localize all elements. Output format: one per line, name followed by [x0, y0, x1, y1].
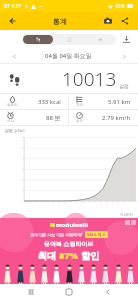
staticText: 2.79 km/h	[102, 114, 131, 122]
staticText: 걸음	[119, 83, 129, 89]
button[interactable]: 거리	[69, 94, 138, 109]
button[interactable]: Steps tab	[23, 35, 53, 44]
staticText: 걸음 수(보)	[5, 128, 25, 133]
button[interactable]: 속도	[69, 110, 138, 125]
staticText: 04월 04일 화요일	[45, 52, 92, 60]
staticText: 할인	[79, 249, 100, 261]
staticText: 시간(시)	[120, 212, 133, 217]
staticText: 최대	[38, 249, 59, 261]
button[interactable]: Back	[100, 284, 116, 299]
staticText: 칼로리	[7, 103, 18, 107]
staticText: SALE 예고	[87, 232, 106, 237]
button[interactable]: Camera	[101, 14, 115, 28]
staticText: 88 분	[46, 114, 61, 122]
staticText: moduinelli	[56, 221, 88, 229]
button[interactable]: 시간	[0, 110, 68, 125]
button[interactable]: Back	[6, 14, 20, 28]
button[interactable]: Tab	[86, 35, 115, 44]
button[interactable]: 칼로리	[0, 94, 68, 109]
staticText: 45%	[115, 3, 125, 10]
button[interactable]: Share	[118, 14, 132, 28]
staticText: 최저가를 사상 가장 저렴하게?	[30, 232, 83, 237]
staticText: 10013	[62, 66, 117, 92]
staticText: 시간	[7, 119, 14, 123]
button[interactable]: Advertisement banner	[0, 218, 138, 284]
staticText: 5.91 km	[108, 98, 131, 106]
staticText: 333 kcal	[38, 98, 61, 106]
button[interactable]: Home	[61, 284, 77, 299]
button[interactable]: Next day	[118, 50, 130, 62]
staticText: 거리	[76, 103, 83, 107]
staticText: 통계	[53, 17, 67, 26]
button[interactable]: Recents	[23, 284, 39, 299]
staticText: 속도	[76, 119, 83, 123]
staticText: 87%	[59, 249, 79, 261]
button[interactable]: Download	[120, 33, 132, 45]
staticText: KT 4:57	[4, 3, 22, 10]
button[interactable]: Ad info	[125, 220, 130, 225]
staticText: 유아복 쇼핑라이브	[44, 240, 94, 248]
button[interactable]: Tab	[55, 35, 84, 44]
button[interactable]: Previous day	[8, 50, 20, 62]
